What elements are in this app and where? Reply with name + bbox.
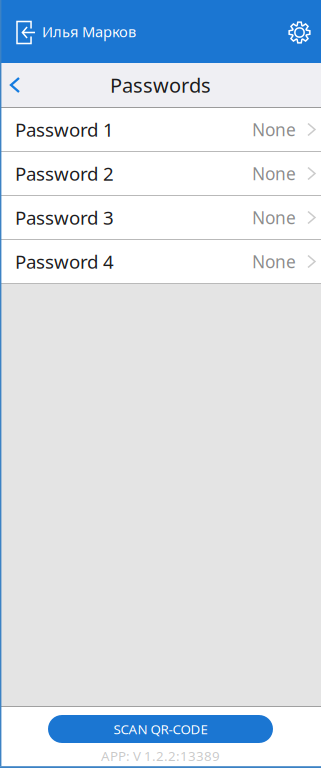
staticText: Password 3: [15, 205, 114, 230]
staticText: APP: V 1.2.2:13389: [101, 747, 220, 765]
button[interactable]: Password 1: [0, 108, 321, 152]
staticText: None: [252, 118, 296, 141]
staticText: None: [252, 206, 296, 229]
button[interactable]: Log out: [0, 0, 42, 63]
staticText: Илья Марков: [42, 22, 136, 41]
staticText: Password 1: [15, 117, 114, 142]
staticText: SCAN QR-CODE: [113, 720, 207, 738]
staticText: None: [252, 162, 296, 185]
button[interactable]: Password 2: [0, 152, 321, 196]
staticText: Password 4: [15, 249, 114, 274]
staticText: Password 2: [15, 161, 114, 186]
staticText: None: [252, 250, 296, 273]
button[interactable]: Password 3: [0, 196, 321, 240]
button[interactable]: SCAN QR-CODE: [48, 715, 273, 743]
button[interactable]: Settings: [289, 0, 321, 63]
staticText: Passwords: [110, 72, 211, 98]
button[interactable]: Back: [0, 63, 41, 107]
button[interactable]: Password 4: [0, 240, 321, 284]
